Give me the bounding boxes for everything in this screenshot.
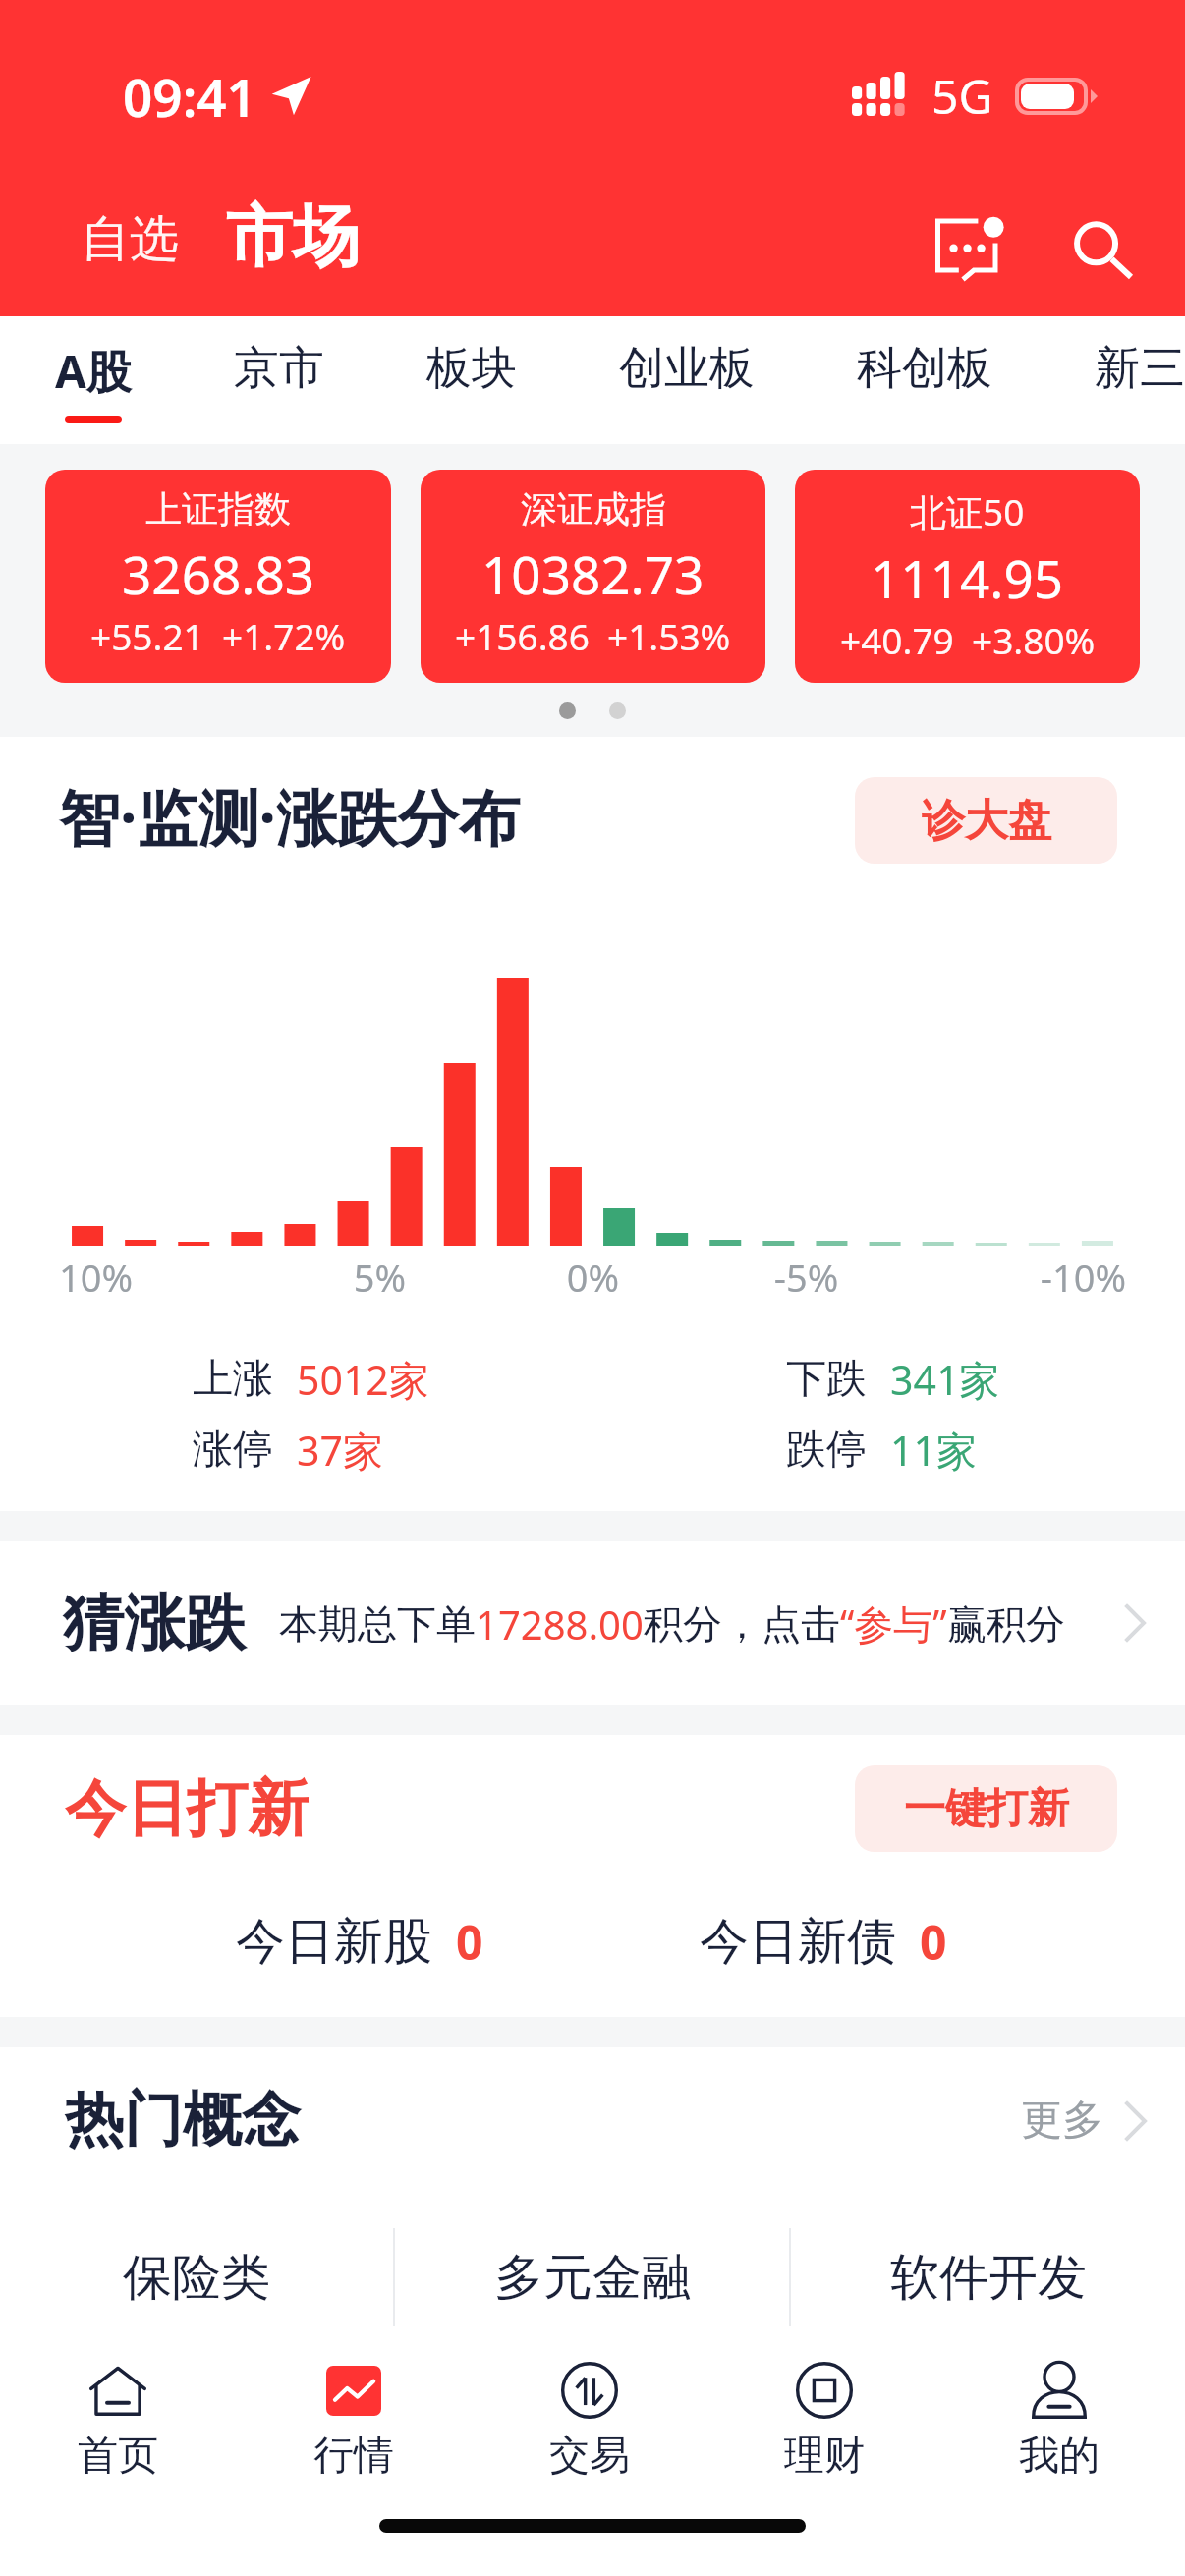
staticText: +1.53%	[607, 611, 731, 660]
staticText: 0%	[486, 1252, 700, 1303]
button[interactable]: 行情	[236, 2342, 472, 2482]
staticText: -5%	[700, 1252, 913, 1303]
staticText: 5012家	[297, 1352, 429, 1407]
staticText: 今日打新	[65, 1770, 309, 1847]
button[interactable]: Search	[1059, 205, 1148, 294]
staticText: 3268.83	[122, 538, 315, 609]
button[interactable]: 北证50	[795, 470, 1140, 683]
staticText: 深证成指	[521, 486, 666, 532]
staticText: 10382.73	[481, 538, 705, 609]
staticText: 京市	[234, 340, 324, 397]
staticText: 341家	[890, 1352, 1000, 1407]
button[interactable]: 上证指数	[45, 470, 391, 683]
button[interactable]: 多元金融	[395, 2228, 789, 2326]
staticText: A股	[55, 340, 132, 402]
staticText: 37家	[297, 1423, 383, 1478]
staticText: 创业板	[619, 340, 755, 397]
button[interactable]: 保险类	[0, 2228, 393, 2326]
staticText: +1.72%	[222, 611, 346, 660]
staticText: 软件开发	[890, 2247, 1087, 2309]
button[interactable]: 更多	[1021, 2087, 1147, 2155]
staticText: 新三	[1095, 340, 1185, 397]
button[interactable]: 京市	[183, 316, 375, 411]
staticText: 1114.95	[871, 542, 1064, 613]
button[interactable]: 交易	[472, 2342, 706, 2482]
staticText: +55.21	[90, 611, 204, 660]
staticText: 科创板	[857, 340, 992, 397]
staticText: 多元金融	[494, 2247, 691, 2309]
button[interactable]: A股	[4, 316, 183, 423]
staticText: +3.80%	[972, 615, 1096, 664]
button[interactable]: 理财	[706, 2342, 941, 2482]
button[interactable]: 深证成指	[421, 470, 765, 683]
staticText: 保险类	[123, 2247, 270, 2309]
staticText: 板块	[426, 340, 517, 397]
staticText: 0	[456, 1910, 483, 1974]
button[interactable]: 板块	[375, 316, 568, 411]
button[interactable]: Messages	[926, 205, 1014, 294]
staticText: 今日新股	[236, 1911, 432, 1973]
button[interactable]: 市场	[218, 194, 367, 282]
staticText: 热门概念	[65, 2083, 301, 2157]
staticText: 5G	[931, 64, 993, 128]
staticText: 更多	[1021, 2095, 1103, 2147]
staticText: 09:41	[123, 61, 256, 132]
staticText: +40.79	[840, 615, 954, 664]
button[interactable]: 首页	[0, 2342, 236, 2482]
staticText: 0	[920, 1910, 947, 1974]
staticText: 市场	[226, 196, 360, 280]
staticText: 一键打新	[904, 1783, 1069, 1835]
staticText: 理财	[784, 2431, 865, 2482]
button[interactable]: 猜涨跌	[0, 1541, 1185, 1705]
staticText: 本期总下单	[279, 1599, 476, 1649]
staticText: 跌停	[786, 1425, 867, 1476]
button[interactable]: 自选	[73, 196, 187, 282]
staticText: 诊大盘	[922, 794, 1051, 848]
staticText: 今日新债	[700, 1911, 896, 1973]
staticText: 智·监测·涨跌分布	[59, 775, 520, 859]
button[interactable]: 科创板	[806, 316, 1044, 411]
staticText: 首页	[78, 2431, 158, 2482]
staticText: 11家	[890, 1423, 977, 1478]
staticText: 下跌	[786, 1354, 867, 1405]
staticText: +156.86	[455, 611, 590, 660]
button[interactable]: 一键打新	[855, 1765, 1117, 1852]
staticText: 涨停	[193, 1425, 273, 1476]
staticText: -10%	[913, 1252, 1126, 1303]
staticText: 10%	[59, 1252, 273, 1303]
staticText: 自选	[81, 208, 179, 270]
staticText: 上证指数	[145, 486, 291, 532]
button[interactable]: 我的	[941, 2342, 1176, 2482]
staticText: 行情	[313, 2431, 394, 2482]
staticText: 上涨	[193, 1354, 273, 1405]
staticText: 猜涨跌	[63, 1585, 246, 1661]
button[interactable]: 新三	[1044, 316, 1185, 411]
staticText: “参与”	[840, 1596, 947, 1651]
staticText: 17288.00	[476, 1597, 644, 1651]
staticText: 我的	[1019, 2431, 1100, 2482]
staticText: 北证50	[910, 486, 1025, 536]
button[interactable]: 创业板	[568, 316, 806, 411]
staticText: 交易	[549, 2431, 630, 2482]
button[interactable]: 软件开发	[791, 2228, 1185, 2326]
staticText: 5%	[273, 1252, 486, 1303]
button[interactable]: 诊大盘	[855, 777, 1117, 864]
staticText: 赢积分	[947, 1599, 1065, 1649]
staticText: 积分，点击	[644, 1599, 840, 1649]
